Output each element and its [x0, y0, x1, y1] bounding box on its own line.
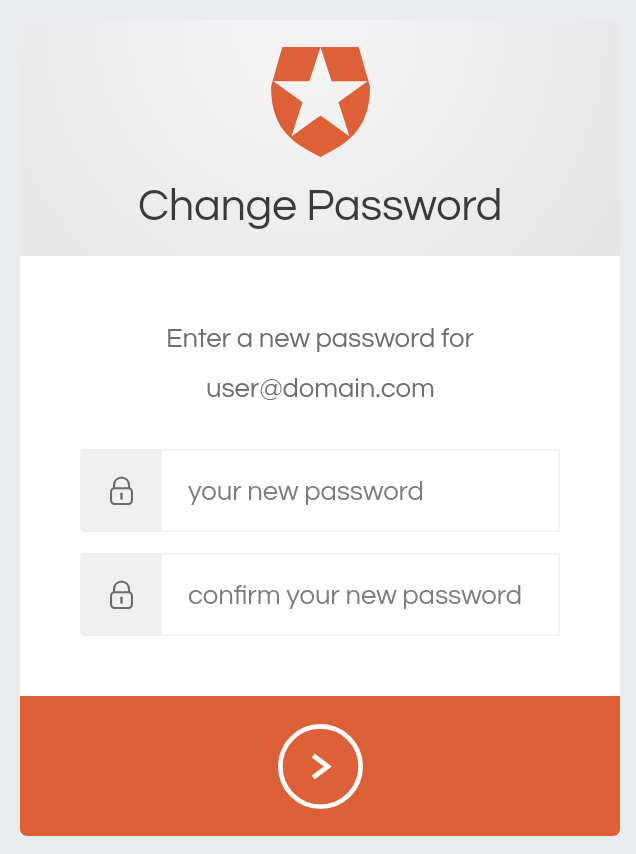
staticText: Change Password — [138, 183, 503, 229]
staticText: Enter a new password for — [166, 324, 474, 352]
button[interactable]: your new password — [80, 449, 560, 532]
button[interactable]: confirm your new password — [80, 553, 560, 636]
staticText: confirm your new password — [188, 581, 523, 609]
button[interactable]: Submit — [20, 696, 620, 836]
staticText: your new password — [188, 477, 424, 505]
staticText: user@domain.com — [206, 374, 435, 402]
